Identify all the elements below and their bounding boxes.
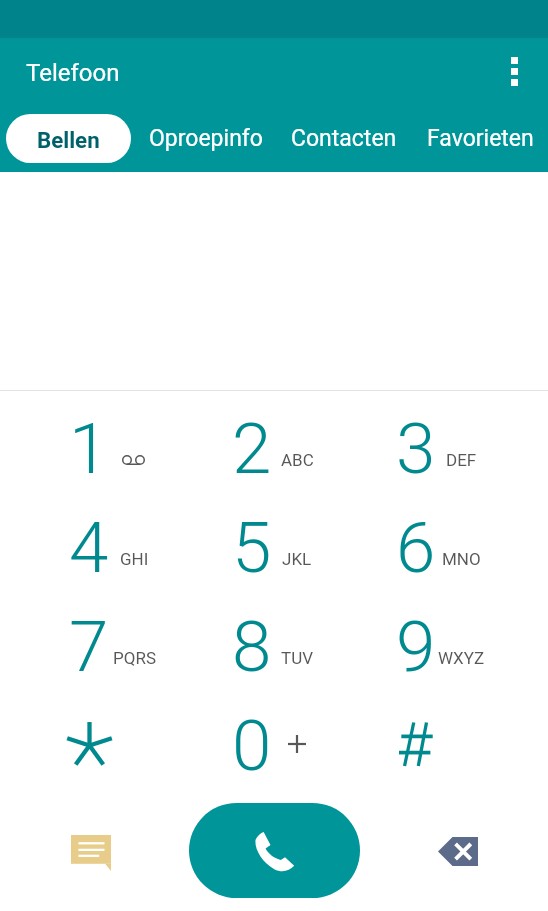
button[interactable]: Call <box>189 803 360 898</box>
staticText: 1 <box>69 407 109 490</box>
staticText: Bellen <box>37 127 100 153</box>
staticText: Favorieten <box>427 125 534 152</box>
staticText: Telefoon <box>26 59 120 87</box>
staticText: 3 <box>396 407 436 490</box>
button[interactable] <box>357 597 521 696</box>
staticText: MNO <box>442 549 481 569</box>
staticText: JKL <box>282 549 312 569</box>
button[interactable] <box>357 498 521 597</box>
button[interactable] <box>30 498 194 597</box>
staticText: TUV <box>281 648 313 668</box>
staticText: PQRS <box>113 648 156 668</box>
staticText: 0 <box>232 704 272 787</box>
staticText: 7 <box>69 605 109 688</box>
button[interactable]: Backspace <box>392 790 522 911</box>
button[interactable] <box>357 399 521 498</box>
button[interactable] <box>193 498 357 597</box>
staticText: 2 <box>232 407 272 490</box>
staticText: 6 <box>396 506 436 589</box>
staticText: Oproepinfo <box>149 125 263 152</box>
staticText: 5 <box>232 506 272 589</box>
button[interactable] <box>193 597 357 696</box>
staticText: 4 <box>69 506 109 589</box>
staticText: 9 <box>396 605 436 688</box>
staticText: DEF <box>446 450 477 470</box>
button[interactable]: Contacten <box>287 117 401 160</box>
button[interactable]: Bellen <box>6 114 131 163</box>
button[interactable] <box>30 597 194 696</box>
staticText: ABC <box>281 450 314 470</box>
button[interactable] <box>193 399 357 498</box>
button[interactable]: Oproepinfo <box>145 117 267 160</box>
staticText: GHI <box>120 549 149 569</box>
button[interactable] <box>30 696 194 795</box>
button[interactable] <box>193 696 357 795</box>
button[interactable] <box>30 399 194 498</box>
staticText: WXYZ <box>438 648 485 668</box>
button[interactable]: Favorieten <box>423 117 538 160</box>
button[interactable]: Send message <box>26 790 156 911</box>
button[interactable] <box>357 696 521 795</box>
button[interactable]: More options <box>490 47 538 95</box>
staticText: 8 <box>232 605 272 688</box>
staticText: Contacten <box>291 125 397 152</box>
